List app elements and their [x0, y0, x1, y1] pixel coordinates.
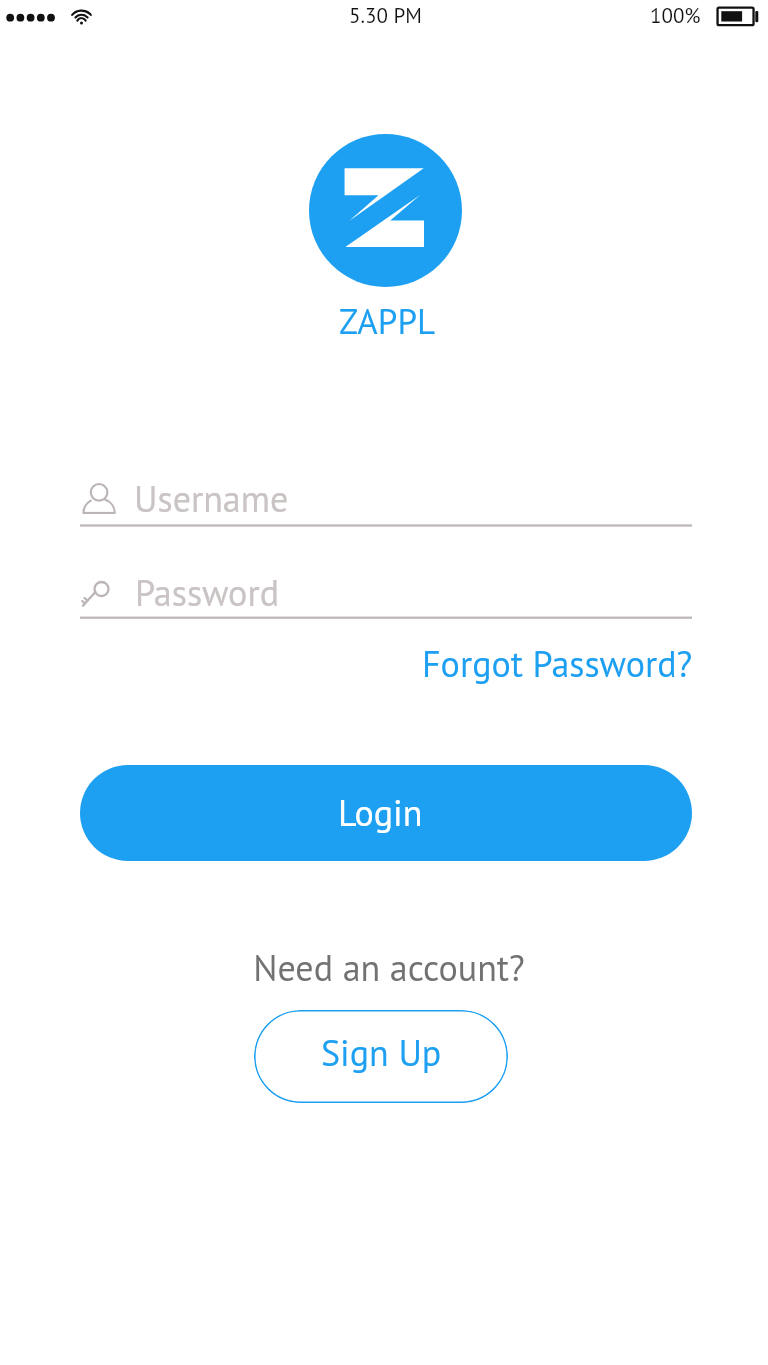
button[interactable]: Forgot Password? [422, 640, 693, 687]
staticText: Password [135, 569, 280, 616]
staticText: Forgot Password? [422, 640, 693, 687]
staticText: 100% [650, 2, 701, 29]
staticText: Need an account? [5, 944, 768, 991]
button[interactable]: Login [80, 765, 692, 861]
button[interactable]: Sign Up [254, 1010, 508, 1103]
staticText: Sign Up [321, 1029, 442, 1076]
button[interactable]: Password [80, 568, 692, 620]
staticText: Login [338, 789, 423, 836]
staticText: 5.30 PM [349, 2, 422, 29]
other: ZAPPL logo [309, 134, 462, 287]
staticText: ZAPPL [3, 298, 768, 343]
staticText: Username [134, 475, 289, 522]
button[interactable]: Username [80, 475, 692, 527]
